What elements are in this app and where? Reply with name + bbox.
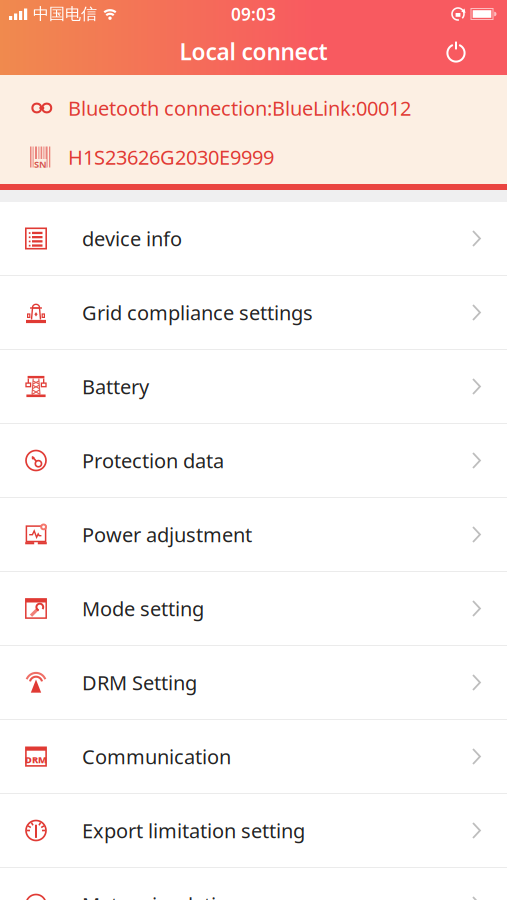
staticText: device info [82, 225, 182, 252]
button[interactable]: DRM Setting [0, 646, 507, 720]
button[interactable]: Battery [0, 350, 507, 424]
button[interactable]: device info [0, 202, 507, 276]
button[interactable]: Mode setting [0, 572, 507, 646]
button[interactable]: Export limitation setting [0, 794, 507, 868]
staticText: Export limitation setting [82, 817, 305, 844]
staticText: Grid compliance settings [82, 299, 313, 326]
staticText: Communication [82, 743, 231, 770]
staticText: Bluetooth connection:BlueLink:00012 [68, 95, 411, 121]
button[interactable]: DRM [0, 720, 507, 794]
button[interactable]: Disconnect [445, 41, 507, 62]
button[interactable]: Protection data [0, 424, 507, 498]
staticText: DRM Setting [82, 669, 197, 696]
staticText: SN [34, 158, 47, 170]
staticText: 09:03 [231, 2, 276, 25]
button[interactable]: Power adjustment [0, 498, 507, 572]
button[interactable]: Grid compliance settings [0, 276, 507, 350]
staticText: Meter simulation [82, 891, 240, 900]
staticText: 中国电信 [33, 4, 97, 24]
button[interactable]: Meter simulation [0, 868, 507, 900]
staticText: Power adjustment [82, 521, 252, 548]
staticText: Mode setting [82, 595, 204, 622]
staticText: Battery [82, 373, 149, 400]
staticText: Protection data [82, 447, 224, 474]
staticText: Local connect [179, 36, 327, 66]
staticText: DRM [25, 753, 47, 766]
staticText: H1S23626G2030E9999 [68, 144, 274, 170]
